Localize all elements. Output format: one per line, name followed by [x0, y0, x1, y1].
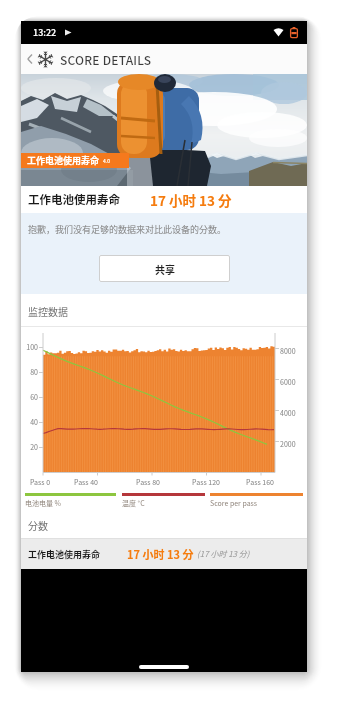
staticText: 17 小时 13 分 — [127, 546, 194, 562]
staticText: SCORE DETAILS — [60, 51, 152, 68]
button[interactable]: 工作电池使用寿命 — [28, 539, 307, 569]
staticText: 80 — [21, 367, 38, 377]
staticText: 40 — [21, 417, 38, 427]
staticText: 13:22 — [33, 26, 57, 39]
button[interactable] — [139, 665, 189, 669]
staticText: 20 — [21, 442, 38, 452]
staticText: 4.0 — [103, 157, 110, 164]
staticText: Pass 0 — [15, 477, 65, 487]
staticText: 4000 — [280, 408, 296, 418]
staticText: Pass 120 — [181, 477, 231, 487]
staticText: 6000 — [280, 377, 296, 387]
staticText: 60 — [21, 392, 38, 402]
staticText: Pass 40 — [61, 477, 111, 487]
button[interactable]: SCORE DETAILS — [25, 44, 307, 74]
staticText: Pass 80 — [123, 477, 173, 487]
staticText: 17 小时 13 分 — [150, 190, 232, 210]
staticText: Pass 160 — [235, 477, 285, 487]
staticText: 抱歉，我们没有足够的数据来对比此设备的分数。 — [28, 223, 227, 236]
staticText: 电池电量 % — [25, 498, 62, 508]
staticText: 8000 — [280, 346, 296, 356]
staticText: Score per pass — [210, 498, 258, 508]
button[interactable]: 共享 — [99, 255, 230, 282]
staticText: 分数 — [28, 518, 48, 532]
staticText: 工作电池使用寿命 — [27, 154, 100, 167]
staticText: 共享 — [155, 262, 175, 276]
staticText: 工作电池使用寿命 — [28, 191, 120, 208]
staticText: 2000 — [280, 439, 296, 449]
staticText: 温度 °C — [122, 498, 145, 508]
staticText: 工作电池使用寿命 — [28, 548, 101, 561]
staticText: 100 — [21, 342, 38, 352]
staticText: (17 小时 13 分) — [197, 548, 250, 560]
staticText: 监控数据 — [28, 304, 68, 318]
